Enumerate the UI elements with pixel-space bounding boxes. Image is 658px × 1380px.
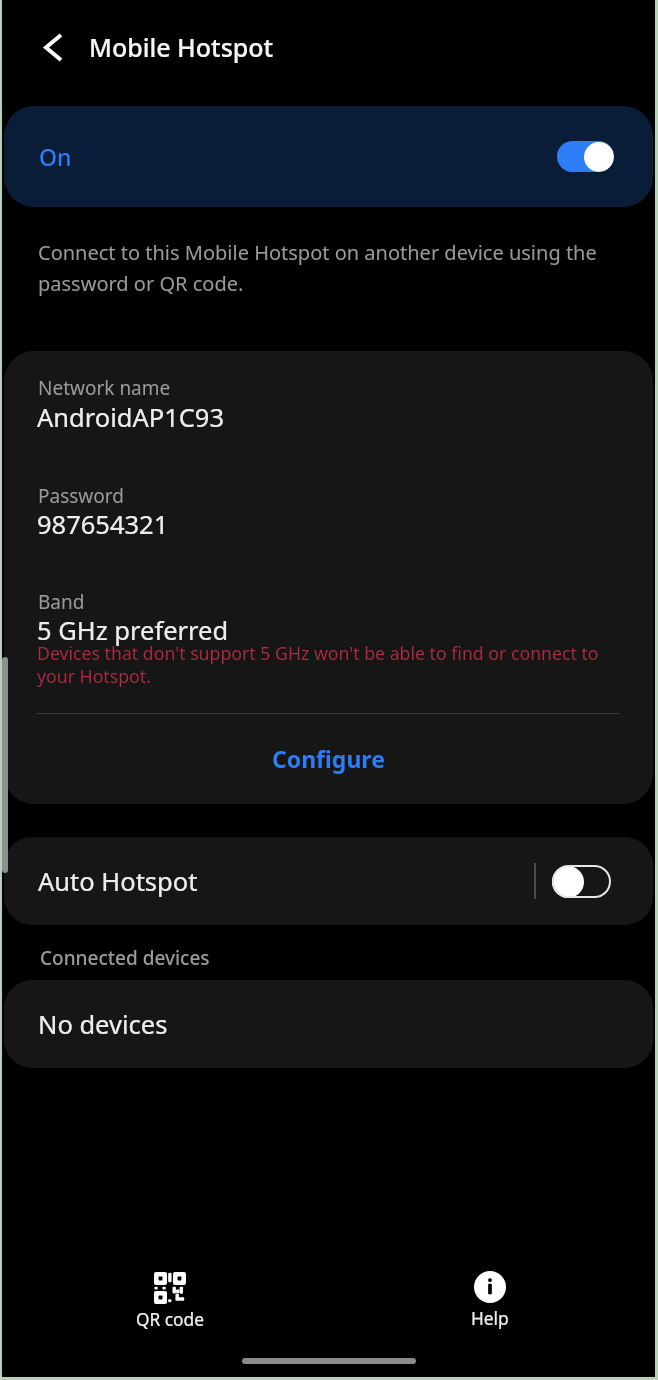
staticText: Connect to this Mobile Hotspot on anothe… <box>38 239 613 297</box>
staticText: Auto Hotspot <box>38 864 198 899</box>
button[interactable]: Help <box>438 1262 542 1340</box>
button[interactable]: Auto Hotspot <box>4 837 653 925</box>
staticText: 5 GHz preferred <box>37 613 229 648</box>
button[interactable]: No devices <box>4 980 653 1068</box>
staticText: Connected devices <box>40 945 210 971</box>
staticText: Password <box>38 483 124 509</box>
button[interactable]: Configure <box>4 714 653 803</box>
staticText: Mobile Hotspot <box>89 30 274 64</box>
staticText: Devices that don't support 5 GHz won't b… <box>37 641 617 688</box>
button[interactable]: QR code <box>118 1263 222 1341</box>
staticText: Network name <box>38 375 171 401</box>
staticText: No devices <box>38 1007 168 1042</box>
staticText: Help <box>471 1307 509 1331</box>
staticText: On <box>39 141 72 172</box>
staticText: QR code <box>136 1308 204 1332</box>
button[interactable]: On <box>4 106 653 207</box>
staticText: AndroidAP1C93 <box>37 400 225 435</box>
button[interactable]: Navigate up <box>26 20 81 75</box>
staticText: Configure <box>272 743 385 774</box>
staticText: Band <box>38 589 85 615</box>
staticText: 987654321 <box>37 507 169 542</box>
